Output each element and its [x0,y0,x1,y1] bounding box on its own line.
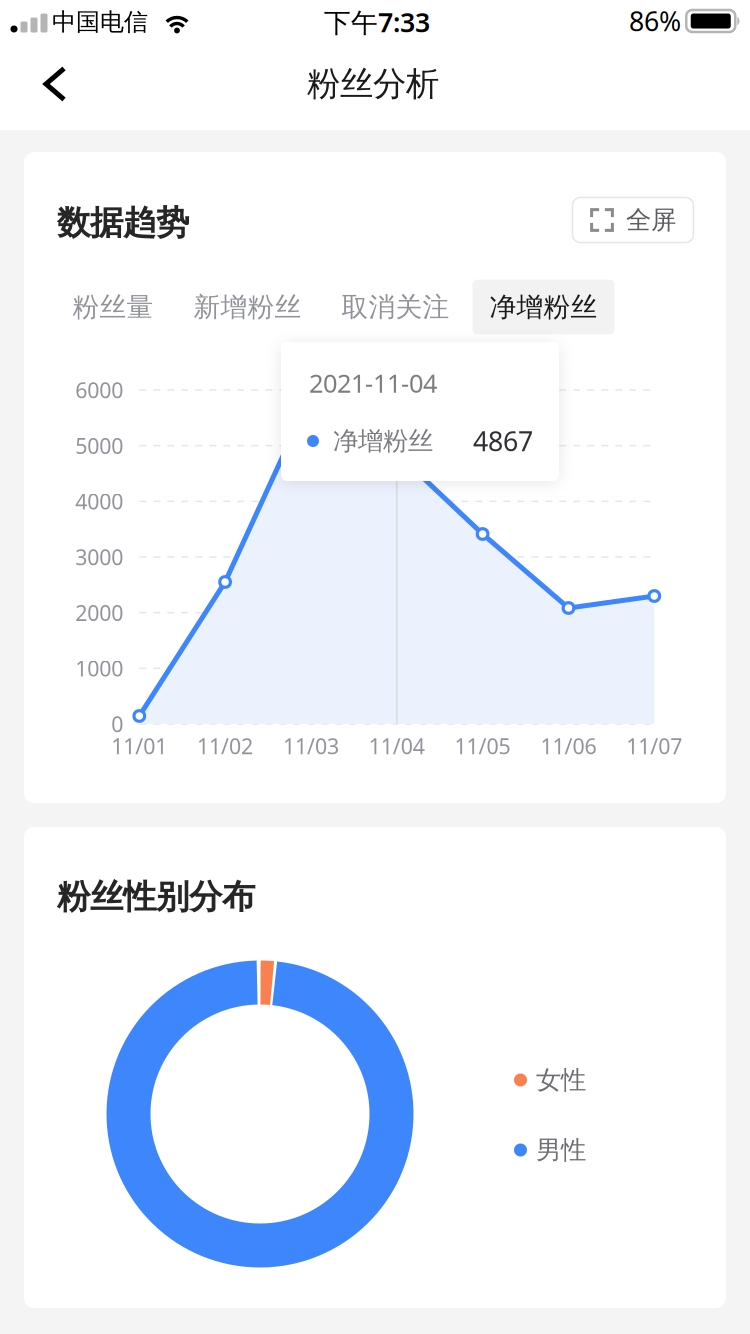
staticText: 11/07 [626,732,682,760]
staticText: 中国电信 [52,7,148,37]
staticText: 女性 [536,1064,586,1095]
staticText: 粉丝性别分布 [57,876,255,917]
staticText: 3000 [75,543,123,571]
button[interactable]: 新增粉丝 [176,280,318,334]
staticText: 粉丝量 [72,291,153,323]
staticText: 下午7:33 [324,4,430,40]
staticText: 2021-11-04 [309,366,437,400]
staticText: 5000 [75,431,123,460]
staticText: 11/02 [197,732,253,760]
button[interactable]: 取消关注 [324,280,466,334]
staticText: 4000 [75,487,123,515]
staticText: 11/03 [283,732,339,760]
button[interactable]: Back [19,52,90,116]
button[interactable]: 粉丝量 [55,280,170,334]
staticText: 男性 [536,1134,586,1165]
staticText: 4867 [473,423,533,459]
staticText: 全屏 [626,204,676,235]
staticText: 6000 [75,376,123,404]
staticText: 取消关注 [341,291,449,323]
staticText: 86% [629,3,681,39]
staticText: 11/05 [455,732,511,760]
staticText: 0 [111,710,123,738]
staticText: 2000 [75,598,123,627]
button[interactable]: 净增粉丝 [472,280,614,334]
staticText: 1000 [75,654,123,682]
staticText: 数据趋势 [57,202,189,243]
staticText: 粉丝分析 [307,63,439,104]
staticText: 新增粉丝 [193,291,301,323]
staticText: 11/06 [540,732,596,760]
staticText: 11/04 [369,732,425,760]
button[interactable]: 全屏 [572,197,693,242]
staticText: 净增粉丝 [489,291,597,323]
staticText: 净增粉丝 [333,425,433,456]
staticText: 11/01 [111,732,167,760]
